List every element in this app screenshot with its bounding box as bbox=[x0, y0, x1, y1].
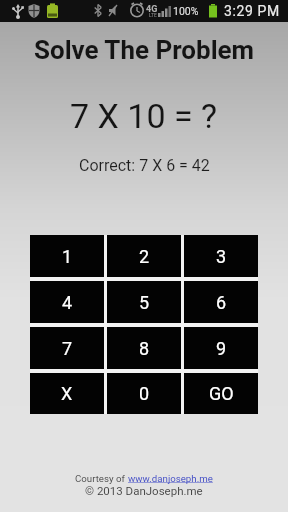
button[interactable]: 2 bbox=[107, 235, 181, 277]
staticText: 0 bbox=[139, 383, 150, 404]
staticText: 4G bbox=[146, 4, 158, 15]
staticText: 3:29 PM bbox=[224, 3, 280, 19]
button[interactable]: 5 bbox=[107, 281, 181, 323]
button[interactable]: 8 bbox=[107, 327, 181, 369]
staticText: 9 bbox=[216, 338, 227, 359]
staticText: 100% bbox=[173, 5, 199, 17]
staticText: © 2013 DanJoseph.me bbox=[85, 484, 203, 497]
staticText: 2 bbox=[139, 246, 150, 267]
staticText: 6 bbox=[216, 292, 227, 313]
staticText: Solve The Problem bbox=[34, 35, 255, 65]
button[interactable]: 1 bbox=[30, 235, 104, 277]
button[interactable]: www.danjoseph.me bbox=[128, 473, 213, 484]
button[interactable]: GO bbox=[184, 373, 258, 414]
staticText: 8 bbox=[139, 338, 150, 359]
button[interactable]: 0 bbox=[107, 373, 181, 414]
staticText: Correct: 7 X 6 = 42 bbox=[79, 156, 210, 175]
staticText: 3 bbox=[216, 246, 227, 267]
staticText: 1 bbox=[62, 246, 73, 267]
staticText: 5 bbox=[139, 292, 150, 313]
staticText: 7 bbox=[62, 338, 73, 359]
button[interactable]: X bbox=[30, 373, 104, 414]
button[interactable]: 3 bbox=[184, 235, 258, 277]
staticText: 7 X 10 = ? bbox=[70, 96, 218, 136]
staticText: X bbox=[61, 383, 73, 404]
staticText: Courtesy of bbox=[75, 473, 128, 484]
button[interactable]: 7 bbox=[30, 327, 104, 369]
button[interactable]: 4 bbox=[30, 281, 104, 323]
staticText: 4 bbox=[62, 292, 73, 313]
button[interactable]: 6 bbox=[184, 281, 258, 323]
button[interactable]: 9 bbox=[184, 327, 258, 369]
staticText: GO bbox=[209, 383, 234, 404]
staticText: LTE bbox=[149, 12, 157, 18]
